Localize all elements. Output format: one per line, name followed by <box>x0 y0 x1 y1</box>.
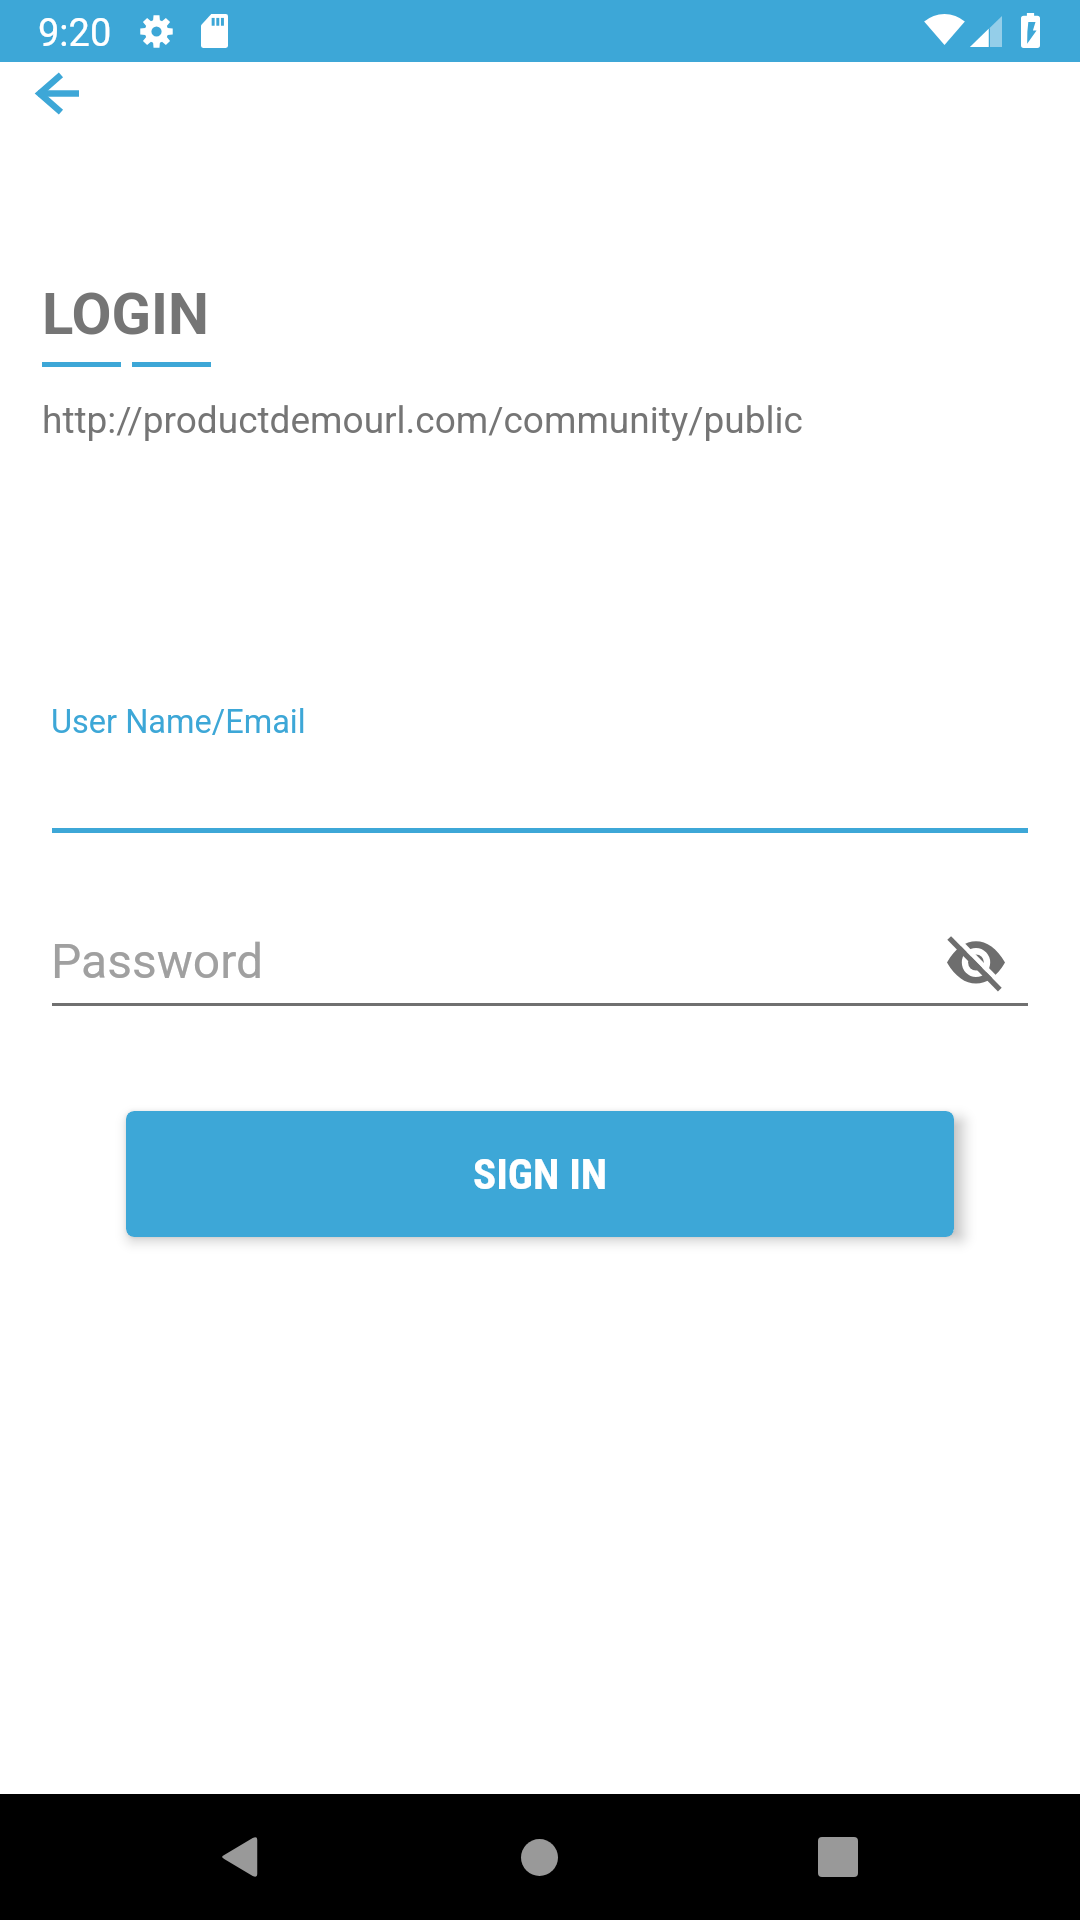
button[interactable]: Back <box>9 45 106 142</box>
button[interactable]: Back <box>190 1808 288 1906</box>
button[interactable]: Recents <box>789 1808 887 1906</box>
staticText: 9:20 <box>38 11 112 56</box>
staticText: Password <box>51 933 264 990</box>
button[interactable]: SIGN IN <box>126 1111 954 1237</box>
button[interactable]: User Name/Email <box>52 695 1028 833</box>
staticText: LOGIN <box>42 280 209 348</box>
staticText: http://productdemourl.com/community/publ… <box>42 398 803 442</box>
button[interactable]: Password <box>52 915 1028 1006</box>
staticText: User Name/Email <box>51 703 306 741</box>
button[interactable]: Show password <box>927 915 1024 1012</box>
staticText: SIGN IN <box>473 1149 608 1200</box>
button[interactable]: Home <box>490 1808 588 1906</box>
